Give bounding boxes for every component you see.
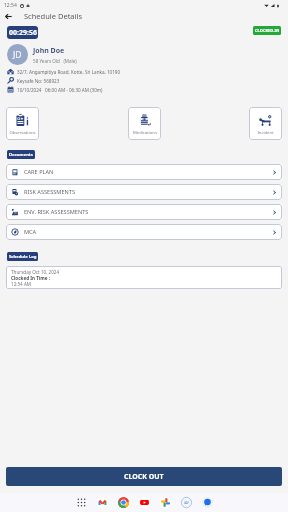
- staticText: Medications: [133, 130, 157, 136]
- button[interactable]: MCA: [6, 224, 282, 240]
- button[interactable]: RISK ASSESSMENTS: [6, 184, 282, 200]
- staticText: 32/7, Angampitiya Road, Kotte, Sri Lanka…: [17, 69, 121, 75]
- staticText: Keysafe No: 568923: [17, 78, 60, 84]
- button[interactable]: Medications: [128, 107, 161, 140]
- button[interactable]: Photos: [158, 495, 173, 510]
- staticText: Documents: [9, 152, 33, 158]
- button[interactable]: CARE PLAN: [6, 164, 282, 180]
- button[interactable]: Assistant: [179, 495, 194, 510]
- staticText: Observations: [9, 130, 36, 136]
- staticText: ENV. RISK ASSESSMENTS: [24, 208, 89, 216]
- staticText: 10/10/2024 06:00 AM - 06:30 AM (30m): [17, 87, 103, 93]
- staticText: CARE PLAN: [24, 168, 54, 176]
- button[interactable]: 00:29:56: [7, 26, 38, 39]
- staticText: Incident: [257, 130, 274, 136]
- staticText: CLOCKED-IN: [255, 28, 280, 33]
- button[interactable]: Documents: [7, 150, 35, 159]
- button[interactable]: Back: [2, 10, 14, 22]
- staticText: MCA: [24, 228, 37, 236]
- button[interactable]: ENV. RISK ASSESSMENTS: [6, 204, 282, 220]
- button[interactable]: Messages: [200, 495, 215, 510]
- staticText: Schedule Details: [24, 11, 83, 21]
- button[interactable]: Incident: [249, 107, 282, 140]
- staticText: Clocked In Time :: [11, 275, 50, 281]
- button[interactable]: CLOCK OUT: [6, 467, 282, 486]
- staticText: 12:54: [4, 2, 17, 9]
- staticText: John Doe: [33, 46, 65, 56]
- staticText: CLOCK OUT: [124, 472, 164, 482]
- staticText: Schedule Log: [9, 254, 37, 260]
- staticText: JD: [13, 49, 22, 61]
- button[interactable]: Schedule Log: [7, 252, 38, 261]
- button[interactable]: Observations: [6, 107, 39, 140]
- staticText: 58 Years Old (Male): [33, 58, 77, 64]
- staticText: 12:54 AM: [11, 281, 32, 287]
- button[interactable]: All apps: [74, 495, 89, 510]
- staticText: 00:29:56: [9, 28, 37, 38]
- staticText: RISK ASSESSMENTS: [24, 188, 75, 196]
- button[interactable]: Gmail: [95, 495, 110, 510]
- staticText: Thursday Oct 10, 2024: [11, 269, 60, 275]
- button[interactable]: YouTube: [137, 495, 152, 510]
- button[interactable]: Chrome: [116, 495, 131, 510]
- button[interactable]: CLOCKED-IN: [253, 26, 281, 35]
